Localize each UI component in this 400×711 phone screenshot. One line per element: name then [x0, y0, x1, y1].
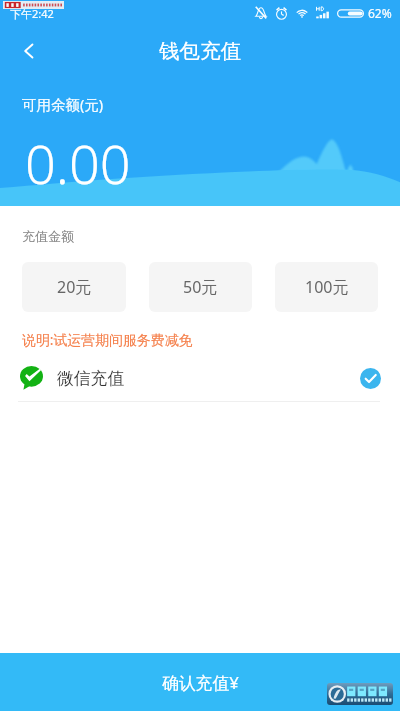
staticText: 可用余额(元) — [22, 94, 104, 114]
staticText: 100元 — [305, 276, 349, 298]
staticText: 钱包充值 — [159, 38, 241, 64]
staticText: 充值金额 — [22, 228, 74, 244]
button[interactable]: Back — [8, 31, 48, 71]
button[interactable]: 微信充值 — [0, 356, 400, 400]
staticText: 62% — [368, 5, 392, 21]
staticText: 0.00 — [25, 126, 131, 200]
staticText: 下午2:42 — [10, 6, 54, 21]
button[interactable]: 50元 — [149, 262, 252, 312]
staticText: 20元 — [57, 276, 92, 298]
staticText: 说明:试运营期间服务费减免 — [22, 330, 193, 349]
button[interactable]: 确认充值¥ — [0, 653, 400, 711]
button[interactable]: 100元 — [275, 262, 378, 312]
button[interactable]: 20元 — [22, 262, 126, 312]
staticText: 50元 — [183, 276, 218, 298]
staticText: 确认充值¥ — [162, 671, 239, 694]
staticText: 微信充值 — [57, 368, 125, 389]
